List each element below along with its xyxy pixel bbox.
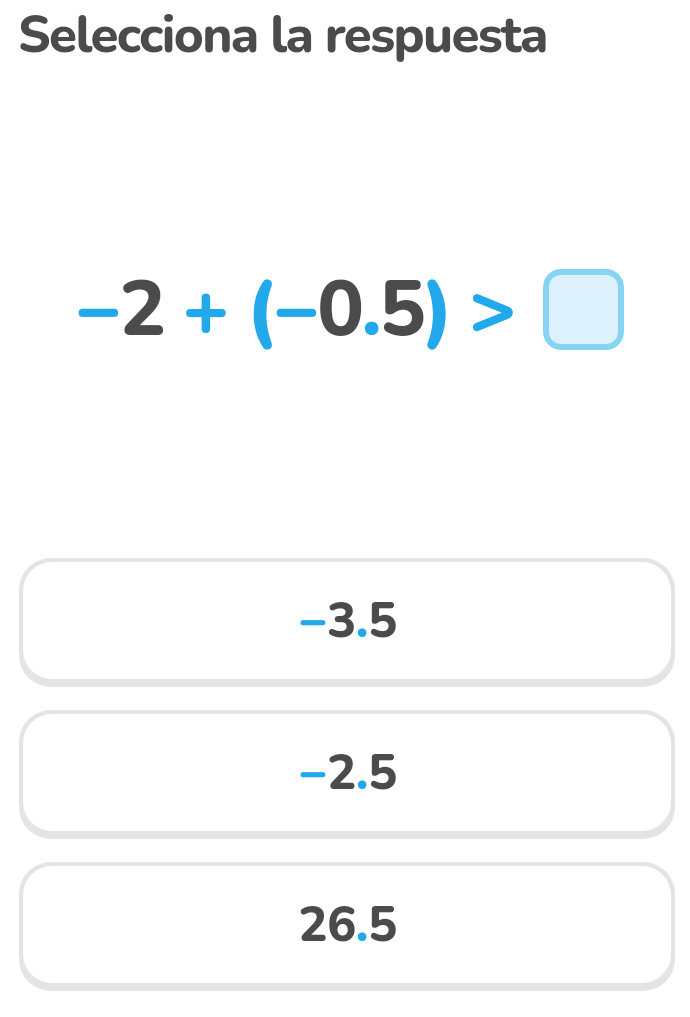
button[interactable]: 26.5 xyxy=(19,862,675,991)
other: Respuesta xyxy=(543,269,624,350)
staticText: −2 + (−0.5) > xyxy=(75,256,534,362)
staticText: −3.5 xyxy=(298,587,397,654)
button[interactable]: −2.5 xyxy=(19,710,675,839)
button[interactable]: −3.5 xyxy=(19,558,675,687)
staticText: 26.5 xyxy=(298,891,397,958)
staticText: Selecciona la respuesta xyxy=(18,0,547,70)
staticText: −2.5 xyxy=(298,739,397,806)
